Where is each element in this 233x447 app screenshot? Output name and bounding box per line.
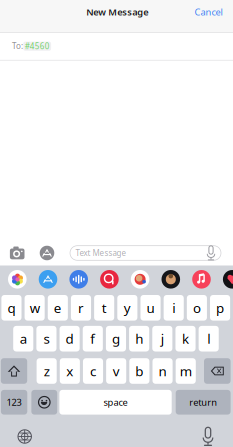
button[interactable]: n xyxy=(152,358,173,384)
button[interactable]: d xyxy=(60,326,80,351)
button[interactable]: Text Message xyxy=(70,246,221,260)
button[interactable]: u xyxy=(140,295,161,321)
staticText: c xyxy=(90,362,96,380)
staticText: j xyxy=(161,330,164,347)
button[interactable]: Memoji sticker xyxy=(129,270,151,289)
button[interactable]: Dictation xyxy=(202,427,214,445)
staticText: n xyxy=(159,362,167,380)
staticText: v xyxy=(113,362,120,380)
staticText: r xyxy=(78,299,84,317)
button[interactable]: g xyxy=(106,326,126,351)
staticText: m xyxy=(180,362,192,380)
staticText: t xyxy=(102,299,107,317)
button[interactable]: space xyxy=(59,390,172,415)
button[interactable]: r xyxy=(71,295,91,321)
button[interactable]: k xyxy=(175,326,196,351)
button[interactable]: b xyxy=(129,358,149,384)
button[interactable]: t xyxy=(94,295,114,321)
staticText: To: xyxy=(12,41,23,51)
button[interactable]: Image search xyxy=(99,270,120,289)
button[interactable]: l xyxy=(199,326,219,351)
button[interactable]: y xyxy=(117,295,137,321)
button[interactable]: m xyxy=(176,358,196,384)
button[interactable]: Audio message xyxy=(68,270,89,289)
button[interactable]: return xyxy=(176,390,231,415)
button[interactable]: Music xyxy=(191,270,212,289)
button[interactable]: s xyxy=(36,326,56,351)
staticText: g xyxy=(112,330,120,347)
staticText: k xyxy=(182,330,189,347)
button[interactable]: Camera xyxy=(9,246,25,260)
staticText: Text Message xyxy=(75,248,126,258)
staticText: f xyxy=(90,330,95,347)
staticText: z xyxy=(44,362,50,380)
staticText: Cancel xyxy=(194,6,222,18)
staticText: a xyxy=(20,330,27,347)
button[interactable]: w xyxy=(25,295,45,321)
button[interactable]: q xyxy=(1,295,21,321)
button[interactable]: Next keyboard xyxy=(18,429,32,443)
button[interactable]: o xyxy=(187,295,207,321)
staticText: return xyxy=(189,396,217,408)
staticText: e xyxy=(54,299,62,317)
staticText: b xyxy=(135,362,143,380)
button[interactable]: Cancel xyxy=(190,3,226,21)
staticText: #4560 xyxy=(25,41,50,51)
button[interactable]: c xyxy=(83,358,103,384)
staticText: w xyxy=(30,299,40,317)
staticText: h xyxy=(135,330,143,347)
button[interactable]: i xyxy=(164,295,184,321)
button[interactable]: Apps xyxy=(39,246,55,260)
button[interactable]: p xyxy=(210,295,230,321)
button[interactable]: f xyxy=(83,326,103,351)
staticText: 123 xyxy=(7,396,22,408)
button[interactable]: 123 xyxy=(1,390,27,415)
button[interactable]: Photos xyxy=(6,270,28,289)
staticText: y xyxy=(124,299,131,317)
button[interactable]: h xyxy=(129,326,149,351)
button[interactable]: a xyxy=(13,326,33,351)
staticText: space xyxy=(103,396,127,408)
button[interactable]: e xyxy=(48,295,68,321)
button[interactable]: Memoji xyxy=(160,270,182,289)
staticText: q xyxy=(7,299,15,317)
button[interactable]: Digital Touch xyxy=(221,270,233,289)
button[interactable]: z xyxy=(37,358,57,384)
button[interactable]: Shift xyxy=(1,358,27,384)
staticText: o xyxy=(193,299,201,317)
staticText: New Message xyxy=(86,6,148,18)
button[interactable]: j xyxy=(152,326,172,351)
staticText: i xyxy=(172,299,175,317)
staticText: x xyxy=(66,362,73,380)
button[interactable]: Emoji xyxy=(31,390,57,415)
button[interactable]: Delete xyxy=(204,358,231,384)
staticText: d xyxy=(66,330,74,347)
staticText: l xyxy=(207,330,210,347)
staticText: s xyxy=(43,330,49,347)
button[interactable]: x xyxy=(60,358,80,384)
button[interactable]: #4560 xyxy=(23,42,51,51)
staticText: p xyxy=(216,299,224,317)
staticText: u xyxy=(146,299,154,317)
button[interactable]: App Store xyxy=(37,270,59,289)
button[interactable]: v xyxy=(106,358,126,384)
